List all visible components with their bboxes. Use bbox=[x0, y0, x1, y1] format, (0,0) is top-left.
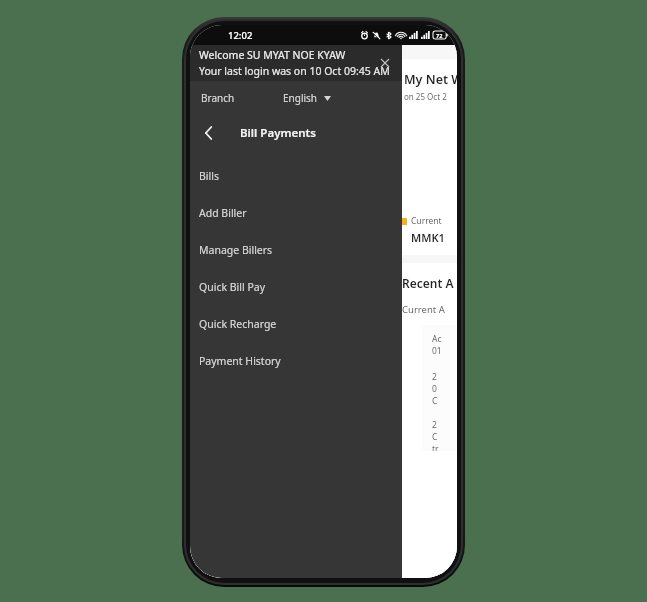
staticText: MMK1 bbox=[411, 230, 445, 245]
button[interactable]: Manage Billers bbox=[190, 231, 402, 268]
button[interactable]: Close bbox=[374, 52, 396, 74]
staticText: C bbox=[432, 395, 438, 407]
staticText: Ac bbox=[432, 333, 442, 345]
staticText: Current bbox=[411, 215, 442, 227]
button[interactable]: Quick Bill Pay bbox=[190, 268, 402, 305]
staticText: 12:02 bbox=[228, 29, 253, 42]
button[interactable]: English bbox=[281, 87, 333, 109]
staticText: English bbox=[283, 91, 318, 105]
button[interactable]: Branch bbox=[199, 87, 237, 109]
staticText: Bills bbox=[199, 169, 219, 183]
staticText: Current A bbox=[402, 303, 445, 316]
staticText: Branch bbox=[201, 91, 235, 105]
staticText: on 25 Oct 2 bbox=[404, 91, 447, 102]
staticText: 2 bbox=[432, 371, 437, 383]
staticText: Welcome SU MYAT NOE KYAW bbox=[199, 48, 346, 62]
staticText: 0 bbox=[432, 383, 437, 395]
staticText: Manage Billers bbox=[199, 243, 273, 257]
staticText: Bill Payments bbox=[240, 125, 316, 141]
button[interactable]: Bills bbox=[190, 157, 402, 194]
staticText: Payment History bbox=[199, 354, 281, 368]
staticText: Quick Bill Pay bbox=[199, 280, 266, 294]
staticText: Quick Recharge bbox=[199, 317, 277, 331]
staticText: tr bbox=[432, 443, 439, 451]
button[interactable]: Quick Recharge bbox=[190, 305, 402, 342]
button[interactable]: Add Biller bbox=[190, 194, 402, 231]
staticText: 01 bbox=[432, 345, 442, 357]
button[interactable]: Back bbox=[194, 119, 222, 147]
staticText: Add Biller bbox=[199, 206, 247, 220]
staticText: 2 bbox=[432, 419, 437, 431]
staticText: Your last login was on 10 Oct 09:45 AM bbox=[199, 64, 390, 78]
staticText: My Net W bbox=[404, 71, 457, 88]
button[interactable]: Payment History bbox=[190, 342, 402, 379]
staticText: C bbox=[432, 431, 438, 443]
staticText: Recent A bbox=[402, 275, 454, 291]
staticText: 72 bbox=[436, 32, 443, 39]
